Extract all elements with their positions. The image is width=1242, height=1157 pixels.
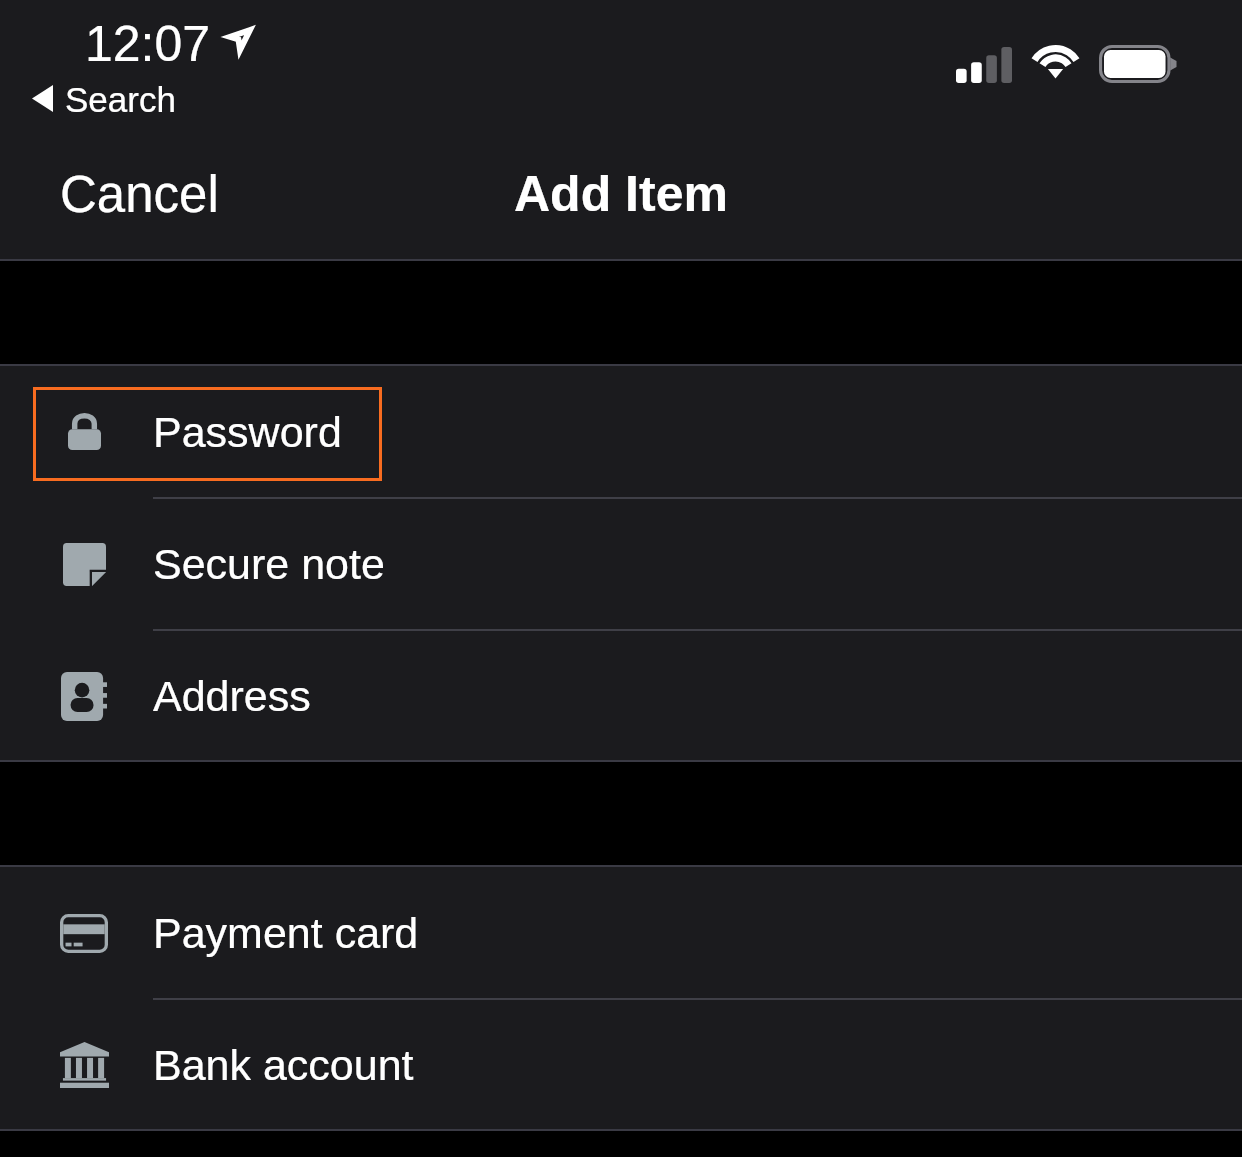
button[interactable]: Address [0, 630, 1242, 762]
staticText: Add Item [514, 166, 728, 222]
staticText: Payment card [153, 909, 419, 957]
button[interactable]: Bank account [0, 999, 1242, 1131]
button[interactable]: Secure note [0, 498, 1242, 630]
staticText: Bank account [153, 1041, 414, 1089]
button[interactable]: Back to Search [26, 76, 188, 121]
button[interactable]: Cancel [40, 156, 239, 233]
staticText: Search [65, 80, 176, 119]
button[interactable]: Payment card [0, 867, 1242, 999]
staticText: Password [153, 408, 342, 456]
staticText: Secure note [153, 540, 385, 588]
staticText: Address [153, 672, 311, 720]
staticText: 12:07 [85, 16, 211, 72]
button[interactable]: Password [0, 366, 1242, 498]
staticText: Cancel [60, 166, 219, 223]
